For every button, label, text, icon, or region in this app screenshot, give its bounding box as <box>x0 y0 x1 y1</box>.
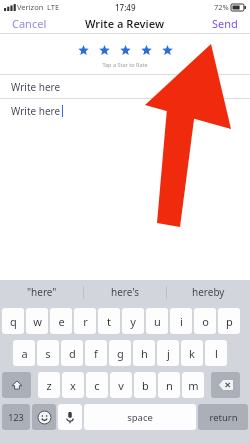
button[interactable]: o <box>194 308 216 334</box>
button[interactable]: i <box>170 308 192 334</box>
button[interactable]: l <box>205 340 227 366</box>
staticText: space <box>127 411 153 424</box>
staticText: q <box>10 314 17 329</box>
button[interactable]: t <box>98 308 120 334</box>
button[interactable]: b <box>134 372 156 398</box>
button[interactable]: Rate star <box>115 40 136 61</box>
button[interactable]: Write here <box>0 99 250 122</box>
button[interactable]: Rate star <box>136 40 157 61</box>
staticText: 17:49 <box>115 2 136 13</box>
button[interactable]: return <box>198 404 248 430</box>
staticText: "here" <box>27 285 57 299</box>
staticText: z <box>46 378 52 393</box>
staticText: LTE <box>47 2 60 12</box>
button[interactable]: hereby <box>167 280 250 304</box>
staticText: h <box>141 346 148 361</box>
staticText: c <box>94 378 100 393</box>
staticText: r <box>83 314 88 329</box>
staticText: m <box>188 378 199 393</box>
button[interactable]: r <box>74 308 96 334</box>
button[interactable]: p <box>218 308 240 334</box>
button[interactable]: a <box>13 340 35 366</box>
staticText: w <box>33 314 42 329</box>
staticText: e <box>58 314 65 329</box>
staticText: b <box>142 378 149 393</box>
button[interactable]: n <box>158 372 180 398</box>
staticText: here's <box>111 285 140 299</box>
staticText: 72% <box>214 2 229 12</box>
staticText: t <box>107 314 111 329</box>
button[interactable]: Key <box>32 404 56 430</box>
button[interactable]: z <box>38 372 60 398</box>
staticText: p <box>226 314 233 329</box>
staticText: x <box>70 378 76 393</box>
button[interactable]: Key <box>2 372 31 398</box>
staticText: f <box>94 346 98 361</box>
button[interactable]: g <box>109 340 131 366</box>
staticText: k <box>189 346 195 361</box>
button[interactable]: y <box>122 308 144 334</box>
button[interactable]: k <box>181 340 203 366</box>
button[interactable]: Key <box>58 404 82 430</box>
button[interactable]: Rate star <box>94 40 115 61</box>
staticText: return <box>209 411 238 424</box>
staticText: Send <box>212 16 238 31</box>
button[interactable]: c <box>86 372 108 398</box>
staticText: Write here <box>11 104 61 118</box>
staticText: hereby <box>192 285 225 299</box>
staticText: j <box>167 346 170 361</box>
button[interactable]: d <box>61 340 83 366</box>
staticText: o <box>202 314 209 329</box>
staticText: Write here <box>11 80 61 94</box>
button[interactable]: q <box>2 308 24 334</box>
staticText: Write a Review <box>85 16 165 31</box>
button[interactable]: s <box>37 340 59 366</box>
button[interactable]: j <box>157 340 179 366</box>
staticText: d <box>69 346 76 361</box>
staticText: s <box>45 346 51 361</box>
button[interactable]: Send <box>202 14 248 33</box>
button[interactable]: u <box>146 308 168 334</box>
staticText: y <box>130 314 136 329</box>
button[interactable]: Rate star <box>73 40 94 61</box>
button[interactable]: x <box>62 372 84 398</box>
staticText: Verizon <box>17 2 44 12</box>
button[interactable]: Cancel <box>2 14 57 33</box>
button[interactable]: f <box>85 340 107 366</box>
button[interactable]: v <box>110 372 132 398</box>
staticText: u <box>154 314 161 329</box>
button[interactable]: h <box>133 340 155 366</box>
button[interactable]: "here" <box>0 280 84 304</box>
staticText: 123 <box>8 411 24 423</box>
button[interactable]: e <box>50 308 72 334</box>
button[interactable]: Key <box>211 372 240 398</box>
staticText: Cancel <box>12 16 47 31</box>
button[interactable]: 123 <box>2 404 30 430</box>
button[interactable]: Rate star <box>157 40 178 61</box>
staticText: Tap a Star to Rate <box>0 61 250 68</box>
button[interactable]: m <box>182 372 204 398</box>
staticText: n <box>166 378 173 393</box>
staticText: l <box>215 346 218 361</box>
staticText: v <box>118 378 124 393</box>
button[interactable]: w <box>26 308 48 334</box>
staticText: i <box>180 314 183 329</box>
button[interactable]: space <box>84 404 196 430</box>
button[interactable]: here's <box>84 280 167 304</box>
staticText: a <box>21 346 28 361</box>
staticText: g <box>117 346 124 361</box>
button[interactable]: Write here <box>0 75 250 98</box>
